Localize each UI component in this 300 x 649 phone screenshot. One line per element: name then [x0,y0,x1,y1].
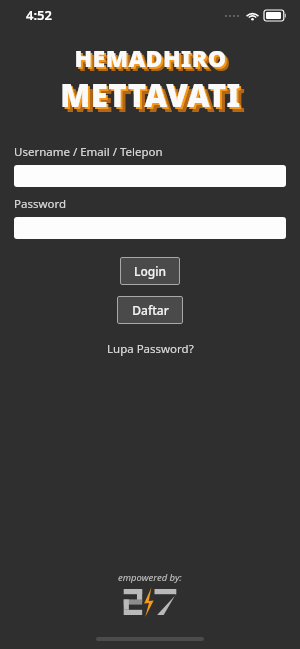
staticText: empowered by: [118,571,182,584]
staticText: METTAVATI [65,79,246,121]
staticText: HEMADHIRO [74,42,227,73]
staticText: METTAVATI [62,76,243,118]
staticText: HEMADHIRO [76,44,229,75]
staticText: Daftar [132,302,169,318]
staticText: 4:52 [26,6,52,24]
staticText: Username / Email / Telepon [14,144,163,160]
staticText: Lupa Password? [107,341,194,357]
button[interactable] [14,217,286,239]
button[interactable]: Lupa Password? [97,338,204,360]
staticText: Password [14,196,67,212]
staticText: METTAVATI [60,74,241,116]
other: 24/7 logo [122,589,178,615]
button[interactable]: Daftar [117,296,183,324]
staticText: HEMADHIRO [78,46,231,77]
staticText: Login [134,263,166,279]
button[interactable]: Login [120,257,180,285]
button[interactable] [14,165,286,187]
